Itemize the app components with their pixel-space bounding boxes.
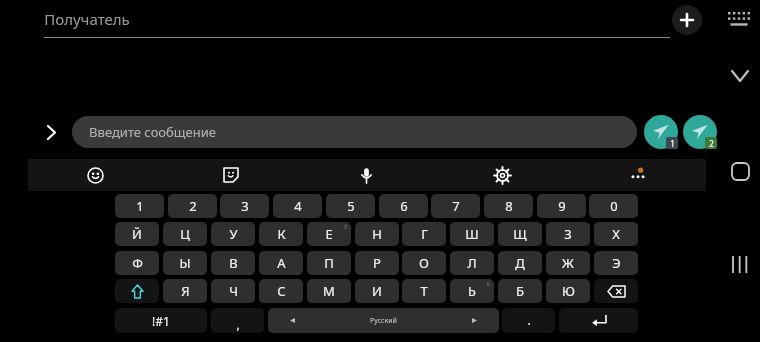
button[interactable]: М [307, 279, 351, 303]
button[interactable]: К [259, 222, 303, 246]
staticText: Э [612, 254, 621, 272]
staticText: 4 [294, 197, 302, 215]
button[interactable]: 4 [273, 194, 322, 218]
button[interactable]: 7 [431, 194, 480, 218]
staticText: Р [373, 254, 381, 272]
button[interactable]: З [546, 222, 590, 246]
button[interactable]: 1 [115, 194, 164, 218]
staticText: Д [515, 254, 525, 272]
button[interactable]: Hide keyboard [728, 11, 750, 27]
button[interactable]: Ш [450, 222, 494, 246]
button[interactable]: Получатель [44, 0, 670, 38]
staticText: 0 [610, 197, 618, 215]
staticText: 8 [505, 197, 513, 215]
staticText: А [277, 254, 286, 272]
staticText: В [229, 254, 238, 272]
button[interactable]: Comma [211, 308, 264, 333]
button[interactable]: Ю [546, 279, 590, 303]
button[interactable]: П [307, 251, 351, 275]
button[interactable]: Ы [163, 251, 207, 275]
button[interactable]: О [402, 251, 446, 275]
staticText: Русский [370, 316, 397, 326]
button[interactable]: Settings [434, 159, 570, 191]
staticText: Ф [132, 254, 143, 272]
button[interactable]: Е [307, 222, 351, 246]
button[interactable]: Й [115, 222, 159, 246]
button[interactable]: Ь [450, 279, 494, 303]
button[interactable]: Ч [211, 279, 255, 303]
staticText: К [277, 225, 286, 243]
button[interactable]: Р [355, 251, 399, 275]
button[interactable]: Л [450, 251, 494, 275]
staticText: Н [372, 225, 382, 243]
button[interactable]: Stickers [163, 159, 298, 191]
staticText: Я [181, 282, 190, 300]
staticText: Й [132, 225, 142, 243]
button[interactable]: Home [726, 157, 754, 185]
staticText: Ж [562, 254, 574, 272]
staticText: Ю [562, 282, 575, 300]
button[interactable]: Recents [726, 250, 754, 278]
button[interactable]: 9 [537, 194, 586, 218]
staticText: , [236, 316, 240, 332]
staticText: Х [612, 225, 620, 243]
staticText: И [372, 282, 382, 300]
staticText: Ц [180, 225, 190, 243]
button[interactable]: Д [498, 251, 542, 275]
button[interactable]: Щ [498, 222, 542, 246]
button[interactable]: С [259, 279, 303, 303]
staticText: !#1 [152, 313, 170, 329]
button[interactable]: Х [594, 222, 638, 246]
button[interactable]: И [355, 279, 399, 303]
button[interactable]: Ц [163, 222, 207, 246]
button[interactable]: Add recipient [672, 5, 702, 35]
button[interactable]: Ф [115, 251, 159, 275]
button[interactable]: Expand [38, 119, 64, 145]
button[interactable]: Send SIM 2 [683, 115, 717, 149]
button[interactable]: Space [268, 308, 499, 333]
button[interactable]: Backspace [594, 279, 638, 303]
staticText: Ш [465, 225, 479, 243]
staticText: Ъ [486, 280, 491, 288]
button[interactable]: Collapse [726, 62, 754, 90]
button[interactable]: В [211, 251, 255, 275]
staticText: Введите сообщение [89, 123, 216, 141]
button[interactable]: Enter [559, 308, 638, 333]
staticText: Б [516, 282, 524, 300]
staticText: 9 [558, 197, 566, 215]
button[interactable]: А [259, 251, 303, 275]
staticText: Ч [229, 282, 238, 300]
button[interactable]: 0 [589, 194, 638, 218]
button[interactable]: Б [498, 279, 542, 303]
button[interactable]: Введите сообщение [72, 116, 637, 148]
button[interactable]: More options [570, 159, 706, 191]
button[interactable]: 8 [484, 194, 533, 218]
button[interactable]: Я [163, 279, 207, 303]
button[interactable]: Н [355, 222, 399, 246]
staticText: 1 [136, 197, 144, 215]
staticText: С [277, 282, 286, 300]
button[interactable]: Send SIM 1 [644, 115, 678, 149]
button[interactable]: Ж [546, 251, 590, 275]
button[interactable]: !#1 [115, 308, 207, 333]
button[interactable]: Г [402, 222, 446, 246]
button[interactable]: Shift [115, 279, 159, 303]
button[interactable]: 2 [168, 194, 217, 218]
button[interactable]: 3 [220, 194, 269, 218]
button[interactable]: У [211, 222, 255, 246]
staticText: 2 [709, 138, 714, 149]
button[interactable]: 6 [379, 194, 428, 218]
staticText: Т [420, 282, 428, 300]
button[interactable]: Т [402, 279, 446, 303]
staticText: 6 [400, 197, 408, 215]
staticText: О [419, 254, 429, 272]
staticText: 7 [452, 197, 460, 215]
button[interactable]: Voice input [298, 159, 434, 191]
button[interactable]: Emoji [28, 159, 163, 191]
staticText: 2 [189, 197, 197, 215]
staticText: П [324, 254, 334, 272]
button[interactable]: Э [594, 251, 638, 275]
button[interactable]: 5 [326, 194, 375, 218]
staticText: Е [325, 225, 333, 243]
button[interactable]: Period [502, 308, 555, 333]
